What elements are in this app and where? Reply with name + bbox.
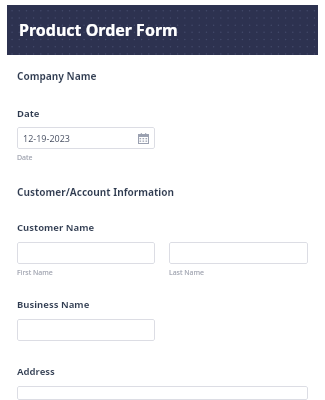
button[interactable]: First Name xyxy=(17,242,155,264)
staticText: First Name xyxy=(17,268,53,278)
staticText: Date xyxy=(17,153,33,163)
staticText: Last Name xyxy=(169,268,205,278)
staticText: Product Order Form xyxy=(19,19,178,41)
staticText: Customer/Account Information xyxy=(17,185,175,199)
button[interactable]: Date xyxy=(17,127,155,149)
staticText: Business Name xyxy=(17,298,90,311)
staticText: Address xyxy=(17,365,55,378)
button[interactable]: Business Name xyxy=(17,319,155,341)
staticText: Customer Name xyxy=(17,221,95,234)
button[interactable]: Street Address xyxy=(17,386,308,400)
staticText: Company Name xyxy=(17,69,97,83)
button[interactable]: Last Name xyxy=(169,242,308,264)
staticText: 12-19-2023 xyxy=(23,132,70,144)
staticText: Date xyxy=(17,107,40,120)
